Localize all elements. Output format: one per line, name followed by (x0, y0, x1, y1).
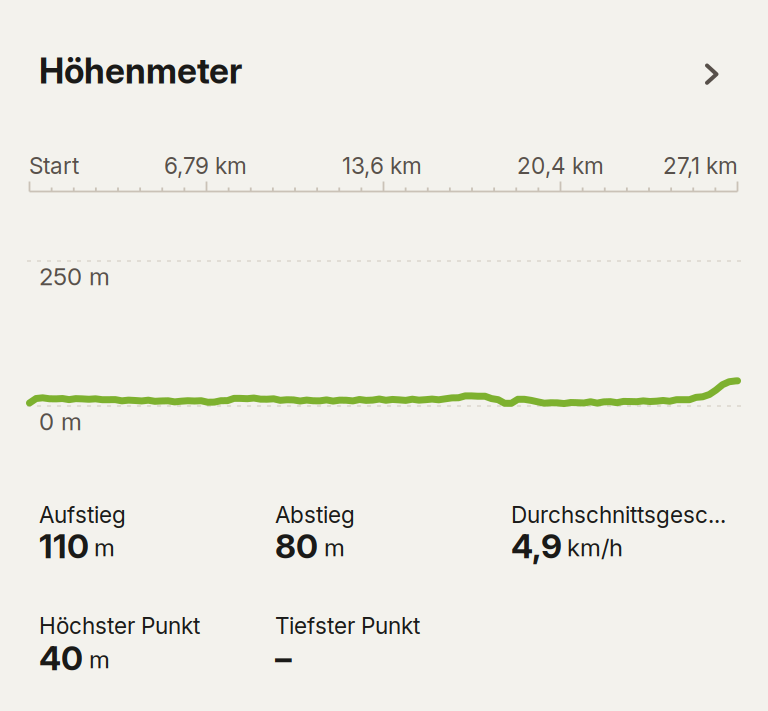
staticText: m (324, 533, 345, 562)
staticText: Abstieg (275, 501, 355, 528)
staticText: Höchster Punkt (39, 612, 200, 639)
staticText: m (94, 533, 115, 562)
staticText: Höhenmeter (39, 50, 242, 92)
staticText: 0 m (39, 407, 82, 436)
staticText: – (275, 638, 292, 678)
staticText: 110 (39, 526, 89, 566)
staticText: Start (29, 152, 79, 179)
staticText: 20,4 km (517, 152, 604, 179)
staticText: 27,1 km (663, 152, 738, 179)
staticText: Durchschnittsgesc... (511, 501, 726, 528)
button[interactable]: Höhenmeter (0, 0, 768, 711)
staticText: Aufstieg (39, 501, 126, 528)
staticText: 40 (39, 638, 83, 678)
staticText: 250 m (39, 262, 110, 291)
staticText: m (89, 645, 110, 674)
staticText: km/h (567, 533, 623, 562)
staticText: 13,6 km (342, 152, 422, 179)
staticText: Tiefster Punkt (275, 612, 420, 639)
staticText: 6,79 km (164, 152, 247, 179)
staticText: 80 (275, 526, 318, 566)
staticText: 4,9 (511, 526, 562, 566)
